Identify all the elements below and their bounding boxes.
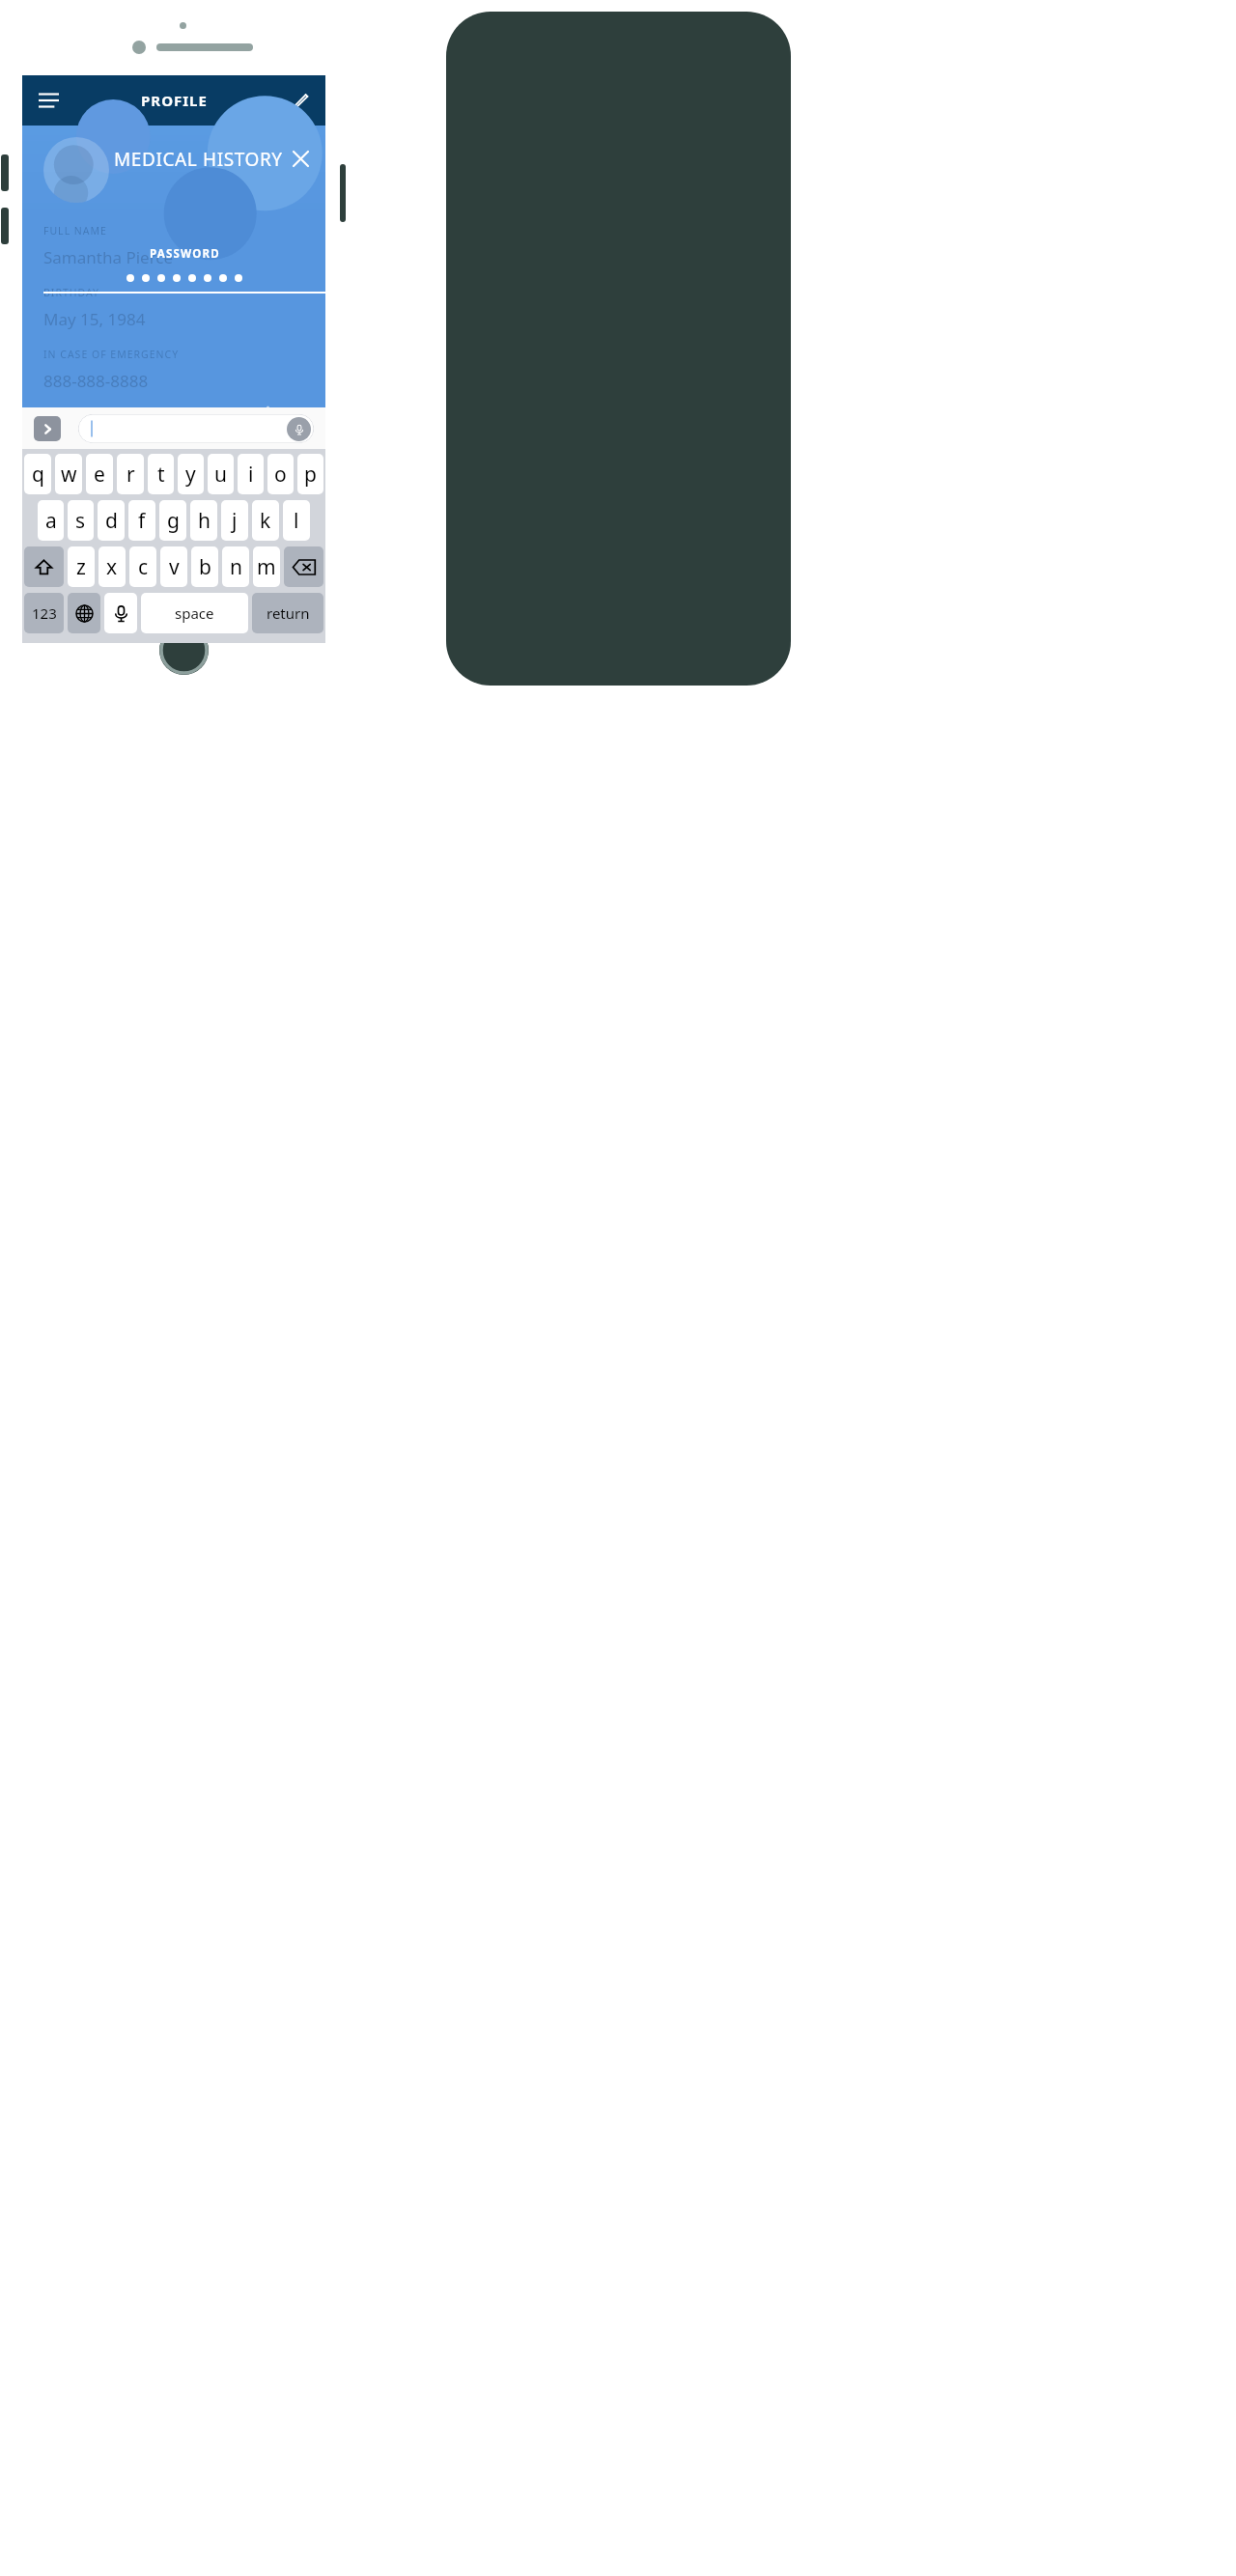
staticText: a (45, 507, 57, 535)
button[interactable]: c (129, 546, 156, 587)
staticText: PROFILE (141, 91, 208, 110)
button[interactable]: Edit (281, 82, 318, 119)
button[interactable]: t (148, 454, 174, 494)
button[interactable]: q (24, 454, 51, 494)
staticText: Samantha Pierce (43, 246, 174, 268)
button[interactable]: x (98, 546, 126, 587)
staticText: 888-888-8888 (43, 370, 149, 392)
button[interactable]: y (178, 454, 204, 494)
button[interactable]: space (141, 593, 248, 633)
button[interactable]: b (191, 546, 218, 587)
staticText: d (105, 507, 118, 535)
button[interactable]: n (222, 546, 249, 587)
button[interactable]: Shift (24, 546, 64, 587)
staticText: return (267, 603, 310, 623)
staticText: f (138, 507, 146, 535)
staticText: i (248, 461, 254, 489)
staticText: n (230, 553, 242, 581)
staticText: k (260, 507, 271, 535)
staticText: h (198, 507, 211, 535)
staticText: b (199, 553, 211, 581)
button[interactable]: Close (281, 139, 320, 178)
button[interactable]: m (253, 546, 280, 587)
button[interactable]: z (68, 546, 95, 587)
button[interactable]: Backspace (284, 546, 323, 587)
button[interactable]: i (238, 454, 264, 494)
button[interactable]: Voice typing (104, 593, 137, 633)
staticText: MEDICAL HISTORY (114, 147, 283, 172)
staticText: BIRTHDAY (43, 286, 100, 299)
staticText: l (294, 507, 299, 535)
button[interactable]: 123 (24, 593, 64, 633)
button[interactable]: j (221, 500, 248, 541)
staticText: IN CASE OF EMERGENCY (43, 348, 180, 361)
button[interactable]: w (55, 454, 82, 494)
staticText: x (106, 553, 118, 581)
staticText: o (274, 461, 287, 489)
staticText: z (76, 553, 86, 581)
button[interactable]: k (252, 500, 279, 541)
button[interactable]: Change language (68, 593, 100, 633)
staticText: m (257, 553, 276, 581)
button[interactable]: o (267, 454, 294, 494)
staticText: w (61, 461, 77, 489)
staticText: FULL NAME (43, 224, 107, 238)
button[interactable]: Voice input (78, 414, 314, 443)
staticText: r (126, 461, 135, 489)
button[interactable]: r (117, 454, 144, 494)
button[interactable]: Next (34, 416, 61, 441)
button[interactable]: s (68, 500, 94, 541)
staticText: space (175, 603, 214, 623)
button[interactable]: a (38, 500, 64, 541)
button[interactable]: e (86, 454, 113, 494)
button[interactable]: u (208, 454, 234, 494)
staticText: c (138, 553, 149, 581)
staticText: 123 (32, 603, 57, 623)
button[interactable]: Menu (30, 82, 67, 119)
button[interactable]: p (297, 454, 323, 494)
button[interactable]: return (252, 593, 323, 633)
staticText: j (232, 507, 238, 535)
staticText: t (157, 461, 165, 489)
staticText: s (75, 507, 86, 535)
staticText: e (94, 461, 105, 489)
staticText: q (32, 461, 44, 489)
button[interactable]: g (159, 500, 186, 541)
staticText: u (214, 461, 227, 489)
button[interactable]: h (190, 500, 217, 541)
staticText: y (185, 461, 196, 489)
button[interactable]: f (128, 500, 155, 541)
staticText: p (304, 461, 317, 489)
button[interactable]: Voice input (287, 417, 311, 441)
button[interactable]: v (160, 546, 187, 587)
staticText: v (169, 553, 180, 581)
staticText: g (167, 507, 180, 535)
staticText: May 15, 1984 (43, 308, 146, 330)
button[interactable]: l (283, 500, 310, 541)
button[interactable]: d (98, 500, 125, 541)
staticText: PASSWORD (150, 246, 220, 262)
